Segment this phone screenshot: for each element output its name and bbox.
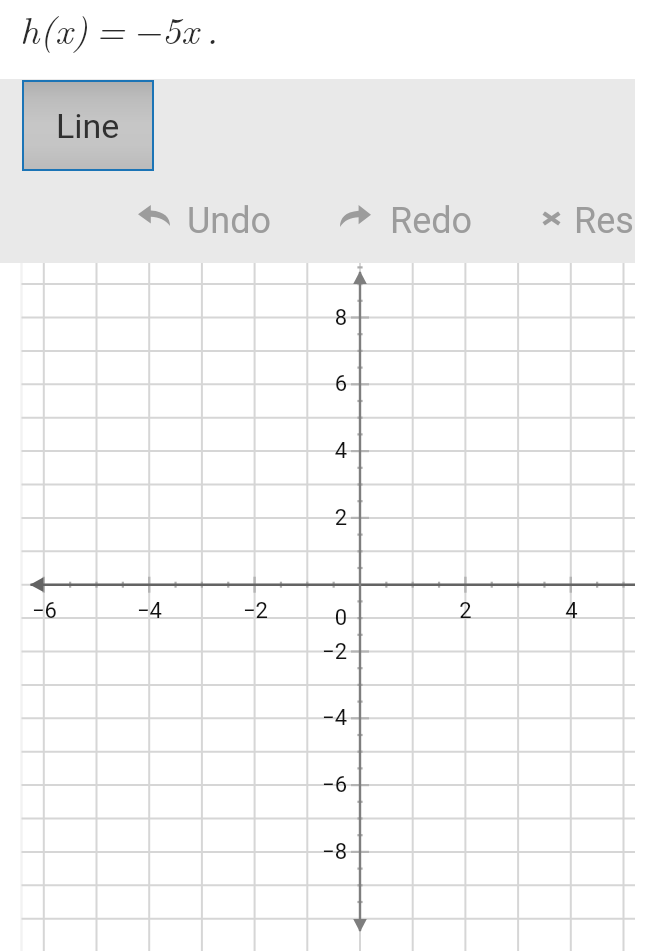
button[interactable]: Undo	[138, 183, 272, 263]
button[interactable]: Reset	[542, 183, 635, 263]
staticText: Reset	[574, 200, 635, 242]
staticText: −2	[243, 598, 268, 624]
staticText: −4	[322, 705, 347, 731]
staticText: Redo	[390, 200, 473, 242]
staticText: 4	[565, 598, 578, 624]
button[interactable]: Redo	[340, 183, 473, 263]
button[interactable]: Line	[24, 82, 152, 169]
staticText: 8	[334, 305, 347, 331]
staticText: −6	[32, 598, 57, 624]
staticText: Line	[56, 106, 120, 146]
staticText: −2	[322, 639, 347, 665]
staticText: −4	[137, 598, 162, 624]
staticText: −8	[322, 839, 347, 865]
staticText: h(x) = −5x .	[20, 1, 218, 55]
staticText: 2	[459, 598, 472, 624]
staticText: 6	[334, 371, 347, 397]
staticText: 0	[334, 605, 347, 631]
staticText: 4	[334, 438, 347, 464]
staticText: Undo	[187, 200, 272, 242]
staticText: −6	[322, 772, 347, 798]
staticText: 2	[334, 505, 347, 531]
